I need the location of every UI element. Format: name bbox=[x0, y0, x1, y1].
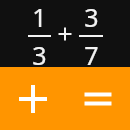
staticText: 3 bbox=[32, 38, 47, 67]
staticText: 1 bbox=[32, 0, 47, 34]
staticText: 3 bbox=[84, 0, 99, 34]
staticText: 7 bbox=[84, 38, 99, 67]
button[interactable]: Add bbox=[0, 67, 65, 130]
button[interactable]: 1 bbox=[0, 0, 130, 67]
button[interactable]: Equals bbox=[65, 67, 130, 130]
